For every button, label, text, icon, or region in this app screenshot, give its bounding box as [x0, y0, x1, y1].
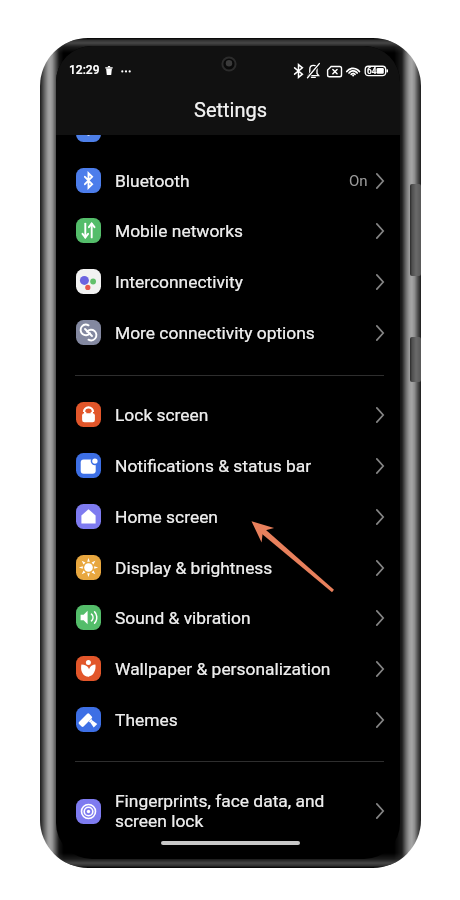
button[interactable]: Home screen [56, 491, 400, 542]
staticText: Interconnectivity [115, 272, 244, 292]
button[interactable] [56, 104, 400, 155]
staticText: Display & brightness [115, 558, 273, 578]
staticText: Fingerprints, face data, and [115, 791, 325, 811]
button[interactable]: Notifications & status bar [56, 440, 400, 491]
staticText: Notifications & status bar [115, 456, 312, 476]
staticText: 64 [367, 66, 377, 76]
staticText: Themes [115, 710, 178, 730]
staticText: Settings [194, 98, 268, 121]
staticText: screen lock [115, 811, 204, 831]
other: Annotation arrow [0, 0, 460, 900]
staticText: Bluetooth [115, 171, 190, 191]
staticText: Lock screen [115, 405, 209, 425]
button[interactable]: Sound & vibration [56, 592, 400, 643]
button[interactable]: Wallpaper & personalization [56, 643, 400, 694]
staticText: Wallpaper & personalization [115, 659, 331, 679]
staticText: 12:29 [69, 63, 100, 77]
button[interactable]: Mobile networks [56, 205, 400, 256]
staticText: Home screen [115, 507, 218, 527]
button[interactable]: More connectivity options [56, 307, 400, 358]
staticText: More connectivity options [115, 323, 315, 343]
button[interactable]: Interconnectivity [56, 256, 400, 307]
staticText: On [349, 172, 368, 190]
button[interactable]: Bluetooth [56, 155, 400, 206]
button[interactable]: Lock screen [56, 389, 400, 440]
staticText: Sound & vibration [115, 608, 251, 628]
button[interactable]: Themes [56, 694, 400, 745]
button[interactable]: Display & brightness [56, 542, 400, 593]
staticText: Mobile networks [115, 221, 244, 241]
button[interactable]: Fingerprints, face data, and [56, 780, 400, 842]
